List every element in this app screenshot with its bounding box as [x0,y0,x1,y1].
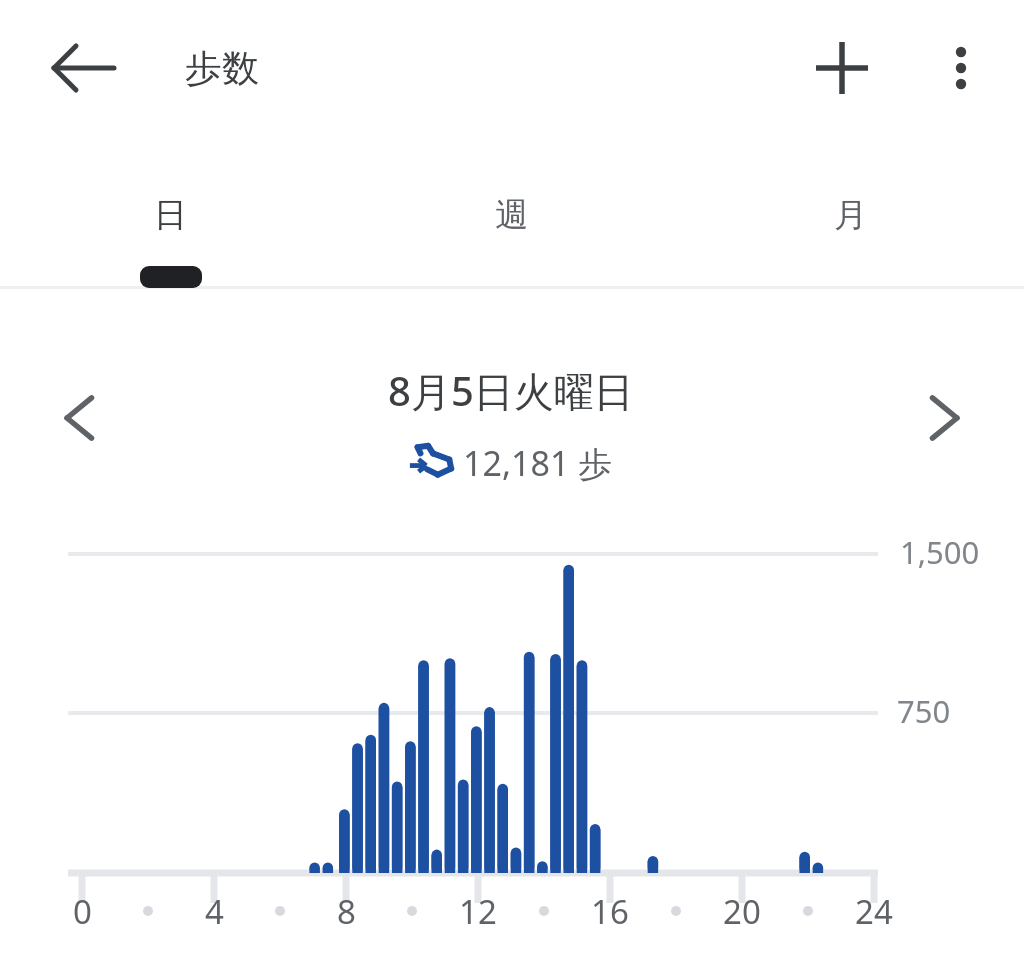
button[interactable] [0,150,341,286]
staticText: 歩数 [185,45,259,92]
staticText: 12,181 歩 [463,440,613,486]
staticText: 月 [834,194,867,236]
button[interactable]: Back [46,30,122,106]
staticText: 750 [897,690,951,732]
staticText: 8 [337,889,356,934]
staticText: 12 [459,889,497,934]
button[interactable] [683,150,1024,286]
button[interactable]: Next day [908,382,980,454]
staticText: 週 [495,194,528,236]
button[interactable] [341,150,683,286]
staticText: 0 [73,889,92,934]
button[interactable]: More options [926,30,996,106]
button[interactable]: Previous day [44,382,116,454]
staticText: 4 [205,889,224,934]
staticText: 1,500 [900,531,980,573]
staticText: 20 [723,889,761,934]
button[interactable]: Add [804,30,880,106]
staticText: 24 [855,889,893,934]
staticText: 日 [154,194,187,236]
staticText: 8月5日火曜日 [388,363,634,418]
staticText: 16 [591,889,629,934]
